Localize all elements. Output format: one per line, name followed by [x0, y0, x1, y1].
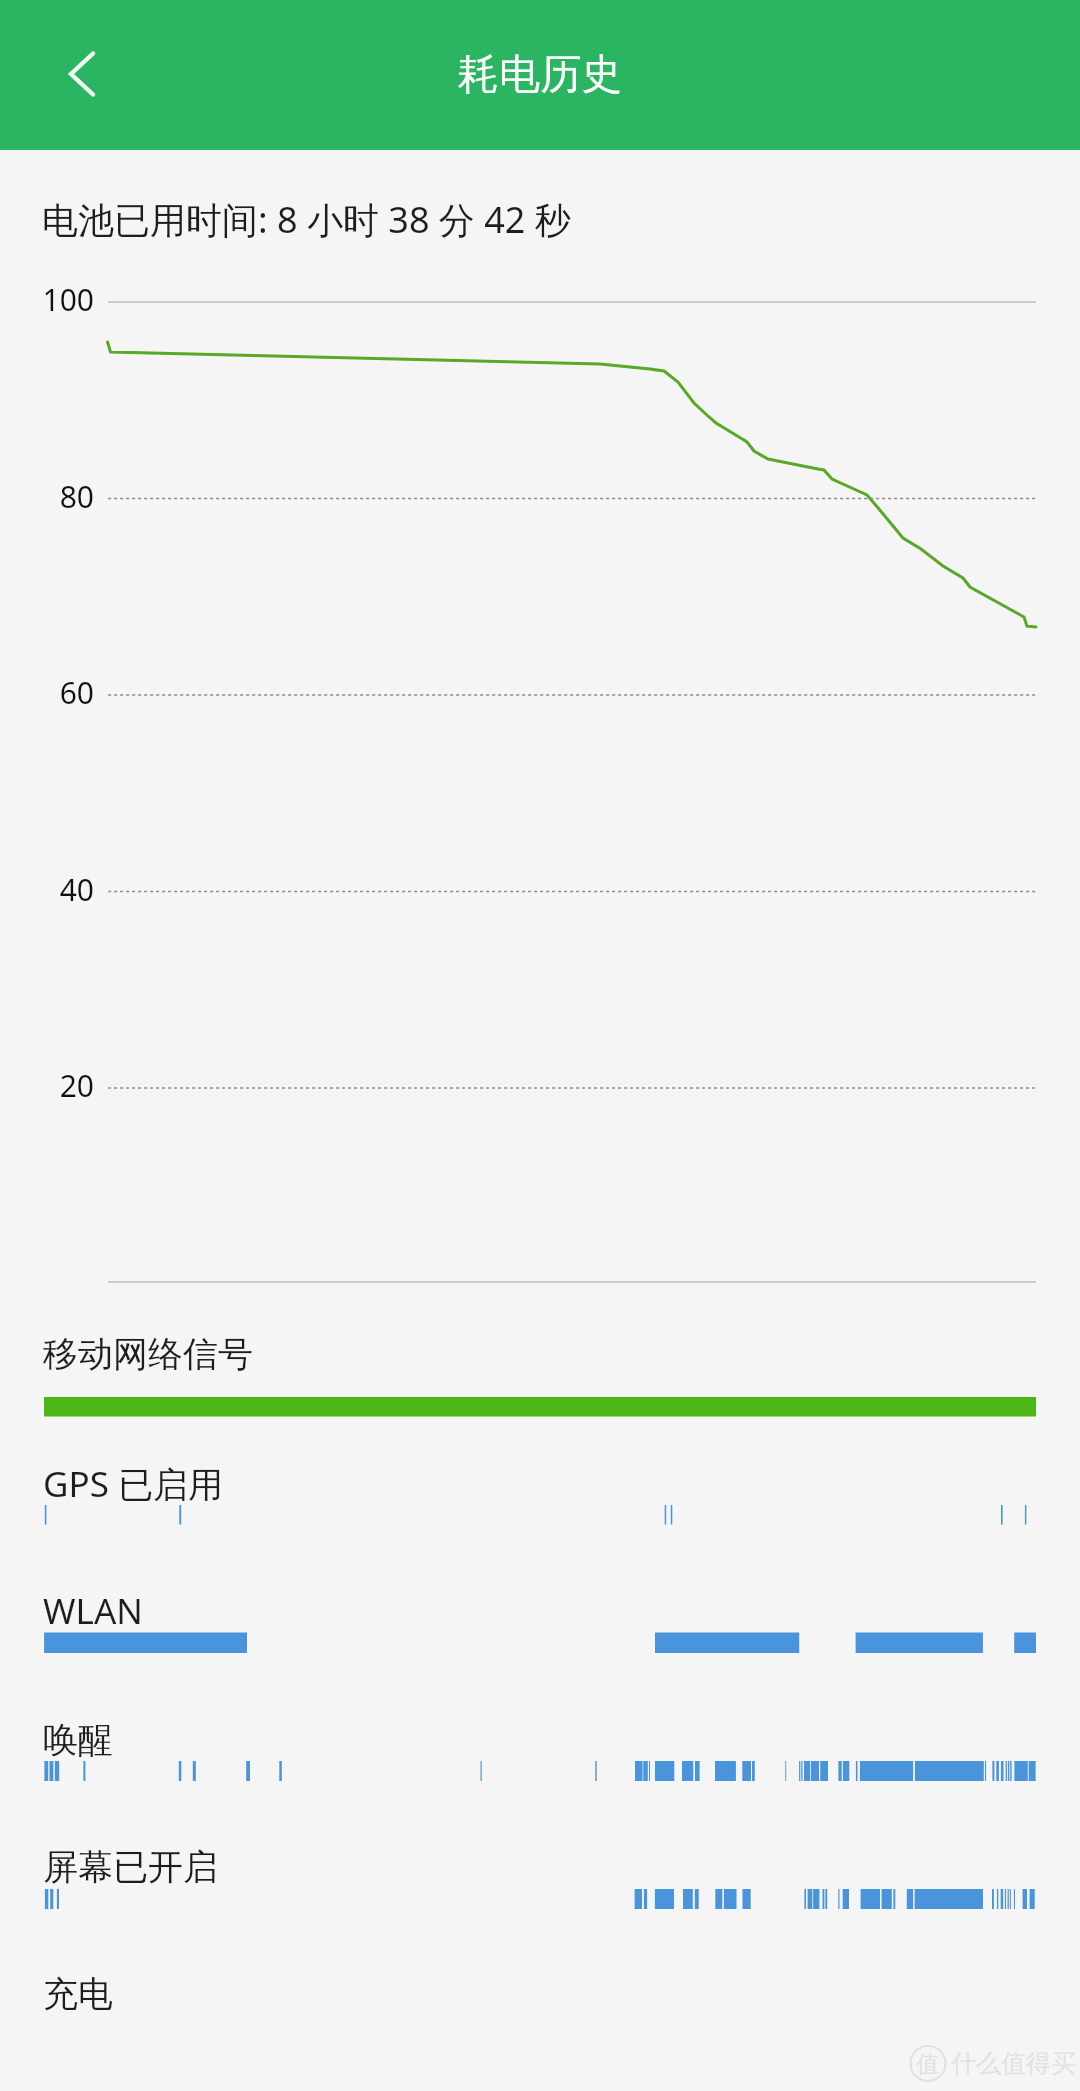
staticText: WLAN [43, 1587, 143, 1635]
staticText: 移动网络信号 [43, 1332, 253, 1376]
button[interactable]: GPS 已启用 [0, 1448, 1080, 1537]
staticText: 60 [0, 672, 94, 713]
staticText: 耗电历史 [458, 49, 622, 101]
button[interactable]: WLAN [0, 1575, 1080, 1665]
button[interactable]: 充电 [0, 1960, 1080, 2047]
staticText: 屏幕已开启 [43, 1845, 218, 1889]
button[interactable]: 唤醒 [0, 1706, 1080, 1793]
staticText: GPS 已启用 [43, 1460, 223, 1508]
button[interactable]: 移动网络信号 [0, 1320, 1080, 1429]
button[interactable]: Back [27, 19, 137, 129]
button[interactable]: 屏幕已开启 [0, 1833, 1080, 1921]
staticText: 80 [0, 476, 94, 517]
staticText: 电池已用时间: 8 小时 38 分 42 秒 [42, 195, 571, 244]
staticText: 20 [0, 1065, 94, 1106]
staticText: 100 [0, 279, 94, 320]
staticText: 充电 [43, 1972, 113, 2016]
staticText: 40 [0, 869, 94, 910]
staticText: 值 [916, 2050, 939, 2079]
staticText: 什么值得买 [951, 2048, 1076, 2079]
staticText: 唤醒 [43, 1718, 113, 1762]
